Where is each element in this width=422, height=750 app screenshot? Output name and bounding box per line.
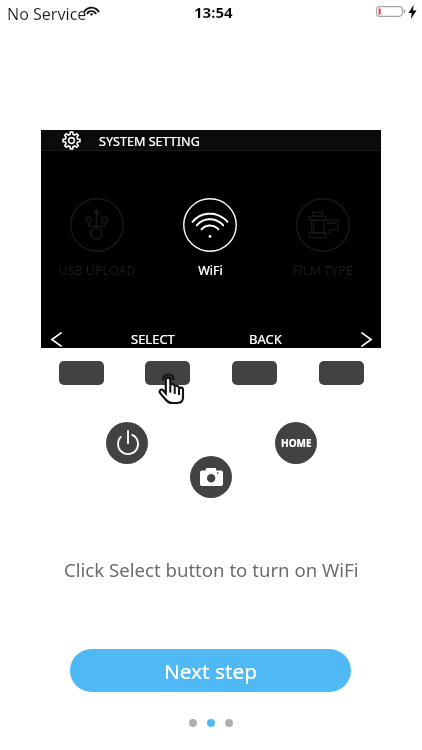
staticText: HOME bbox=[281, 436, 312, 450]
button[interactable]: Menu button bbox=[319, 361, 364, 385]
button[interactable]: USB UPLOAD bbox=[37, 198, 157, 279]
button[interactable]: Camera bbox=[190, 456, 232, 498]
button[interactable]: Select button bbox=[145, 361, 190, 385]
button[interactable]: HOME bbox=[275, 422, 317, 464]
staticText: SYSTEM SETTING bbox=[99, 133, 200, 150]
button[interactable]: Previous bbox=[45, 328, 67, 350]
staticText: Click Select button to turn on WiFi bbox=[64, 557, 359, 582]
button[interactable]: WiFi bbox=[150, 198, 270, 279]
button[interactable]: Next bbox=[355, 328, 377, 350]
staticText: BACK bbox=[249, 330, 282, 347]
staticText: WiFi bbox=[198, 262, 223, 279]
button[interactable]: Power bbox=[106, 422, 148, 464]
button[interactable]: Next step bbox=[70, 649, 351, 692]
staticText: No Service bbox=[7, 3, 87, 25]
staticText: SELECT bbox=[131, 330, 175, 347]
button[interactable]: Back button bbox=[232, 361, 277, 385]
button[interactable]: FILM TYPE bbox=[262, 198, 382, 279]
button[interactable]: BACK bbox=[225, 330, 305, 347]
staticText: FILM TYPE bbox=[292, 262, 353, 279]
staticText: USB UPLOAD bbox=[58, 262, 136, 279]
staticText: Next step bbox=[164, 657, 258, 685]
button[interactable]: Power button bbox=[59, 361, 104, 385]
button[interactable]: SELECT bbox=[113, 330, 193, 347]
staticText: 13:54 bbox=[194, 2, 233, 22]
